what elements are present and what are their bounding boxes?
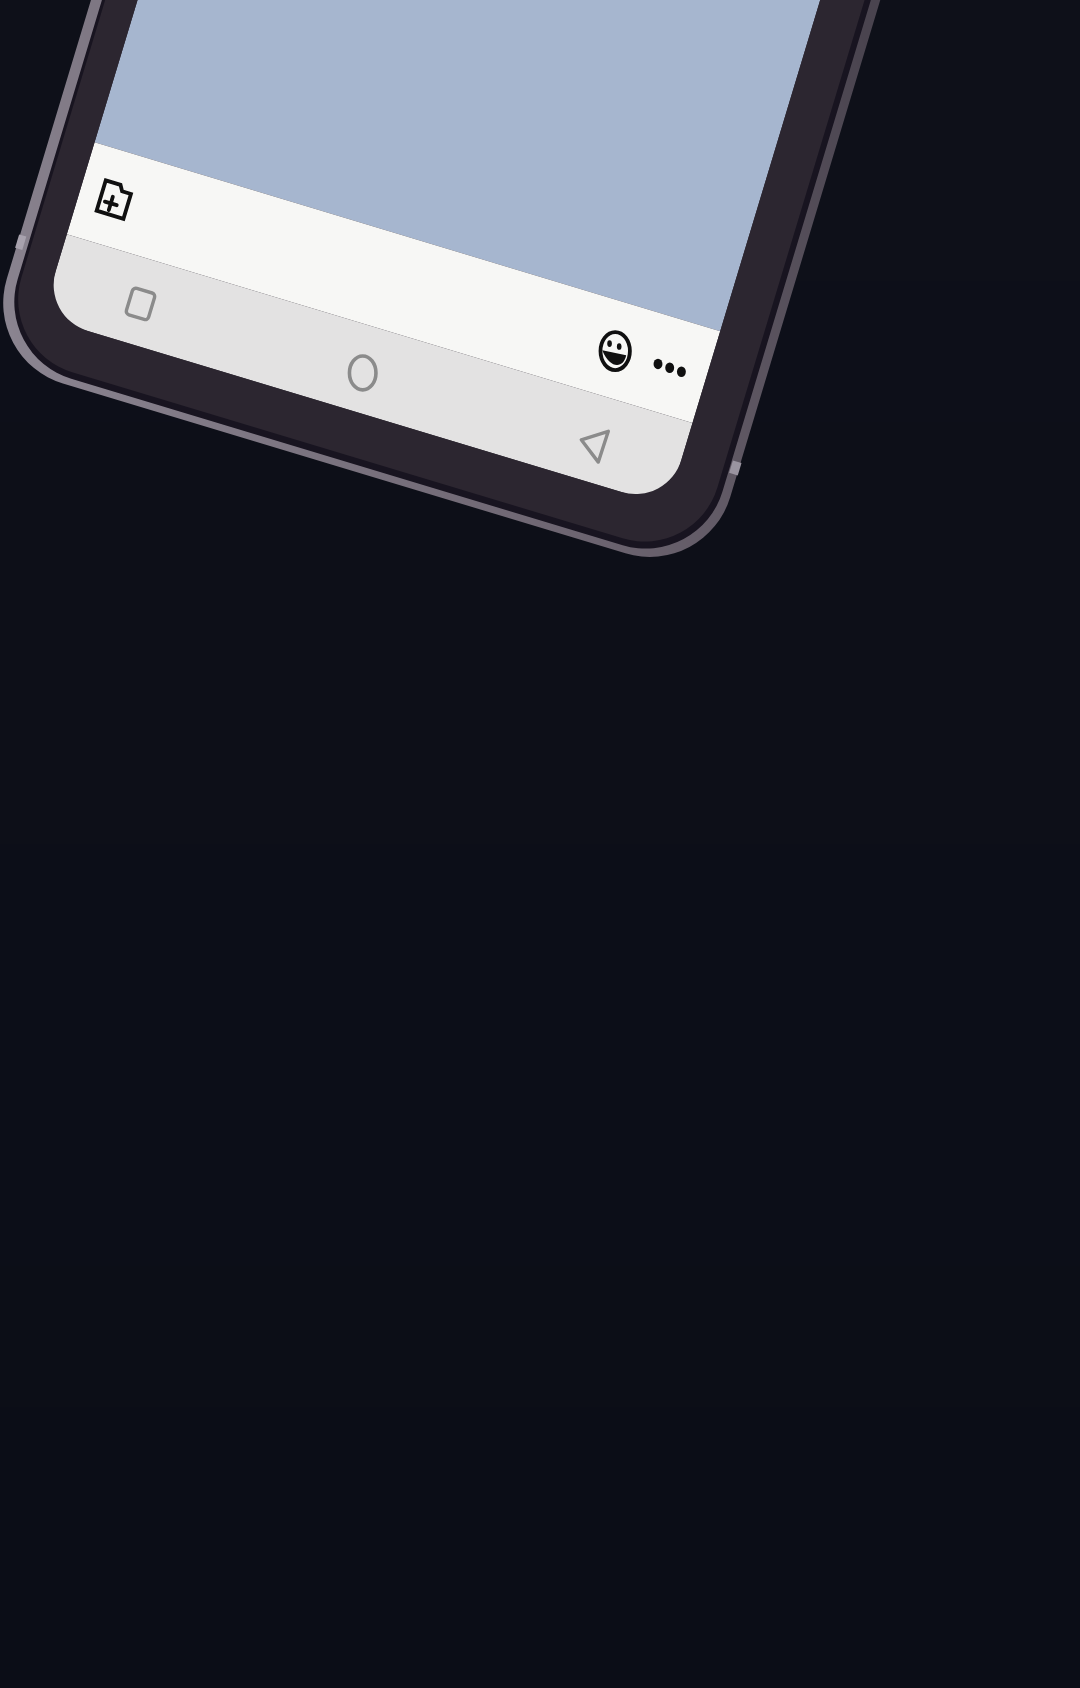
button[interactable]: App preview — [0, 0, 1080, 1688]
